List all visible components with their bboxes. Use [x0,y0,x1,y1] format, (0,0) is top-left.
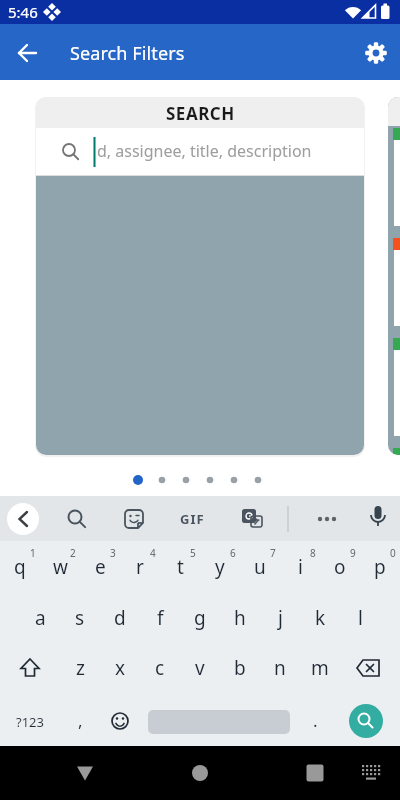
button[interactable]: j [260,604,300,632]
button[interactable]: h [220,604,260,632]
button[interactable] [54,496,98,541]
staticText: j [278,605,283,631]
button[interactable] [1,496,45,541]
staticText: 5:46 [8,2,38,22]
button[interactable]: k [300,604,340,632]
button[interactable] [346,746,396,800]
button[interactable] [349,704,383,738]
staticText: 4 [150,546,156,560]
staticText: , [78,709,83,732]
staticText: 3 [110,546,116,560]
staticText: 1 [30,546,36,560]
staticText: s [75,605,85,631]
button[interactable]: x [100,654,140,682]
staticText: Search Filters [70,41,185,66]
button[interactable]: v [180,654,220,682]
button[interactable]: s [60,604,100,632]
button[interactable]: w [40,553,80,581]
button[interactable]: . [295,706,335,734]
staticText: e [95,554,106,580]
staticText: p [374,554,386,580]
staticText: i [298,554,303,580]
button[interactable] [10,642,50,682]
button[interactable]: o [320,553,360,581]
button[interactable] [100,702,140,738]
button[interactable]: l [340,604,380,632]
button[interactable]: a [20,604,60,632]
staticText: w [53,554,68,580]
staticText: r [136,554,144,580]
staticText: v [195,655,205,681]
button[interactable]: c [140,654,180,682]
button[interactable] [348,642,388,682]
button[interactable] [352,28,400,76]
staticText: g [194,605,206,631]
button[interactable] [4,28,52,76]
staticText: . [313,709,318,732]
staticText: 0 [390,546,396,560]
staticText: x [115,655,126,681]
button[interactable] [230,496,274,541]
button[interactable]: p [360,553,400,581]
button[interactable] [112,496,156,541]
staticText: l [358,605,363,631]
button[interactable]: g [180,604,220,632]
button[interactable] [305,496,349,541]
button[interactable]: ?123 [10,708,50,736]
staticText: 5 [190,546,196,560]
staticText: c [155,655,165,681]
button[interactable]: , [60,706,100,734]
button[interactable] [170,496,214,541]
button[interactable] [60,746,110,800]
staticText: o [334,554,346,580]
staticText: d, assignee, title, description [97,140,312,162]
staticText: 9 [350,546,356,560]
staticText: ?123 [16,713,44,731]
staticText: 8 [310,546,316,560]
button[interactable]: m [300,654,340,682]
staticText: f [157,605,164,631]
button[interactable] [175,746,225,800]
staticText: n [274,655,286,681]
staticText: h [234,605,246,631]
staticText: q [14,554,26,580]
button[interactable]: t [160,553,200,581]
button[interactable]: b [220,654,260,682]
staticText: m [311,655,329,681]
staticText: y [215,554,225,580]
staticText: z [76,655,85,681]
button[interactable]: u [240,553,280,581]
staticText: d [114,605,126,631]
button[interactable]: r [120,553,160,581]
staticText: k [315,605,326,631]
button[interactable]: e [80,553,120,581]
staticText: SEARCH [166,102,235,125]
button[interactable]: z [60,654,100,682]
button[interactable] [290,746,340,800]
button[interactable] [356,496,400,541]
staticText: 2 [70,546,76,560]
button[interactable]: y [200,553,240,581]
staticText: b [234,655,246,681]
staticText: 7 [270,546,276,560]
staticText: 6 [230,546,236,560]
button[interactable]: d [100,604,140,632]
button[interactable]: i [280,553,320,581]
button[interactable]: f [140,604,180,632]
staticText: t [177,554,184,580]
staticText: u [254,554,266,580]
button[interactable]: n [260,654,300,682]
staticText: GIF [180,510,205,528]
button[interactable]: q [0,553,40,581]
staticText: a [35,605,46,631]
button[interactable] [36,128,364,175]
